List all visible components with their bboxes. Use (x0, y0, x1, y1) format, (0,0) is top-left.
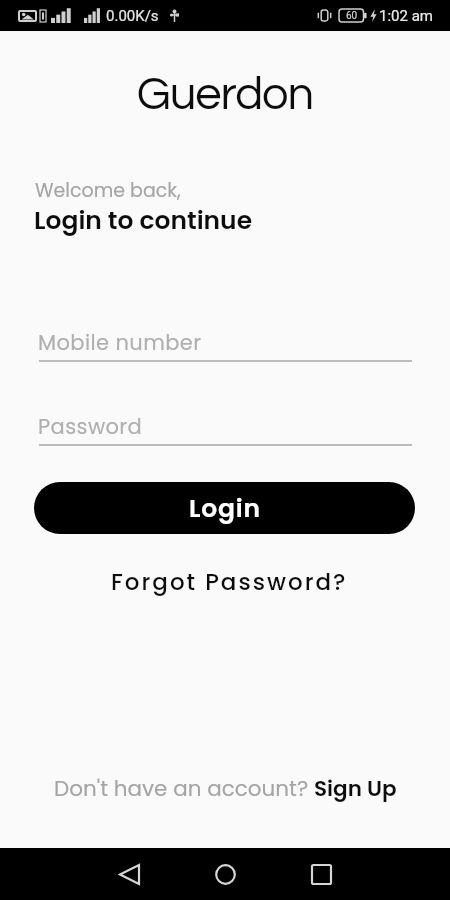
button[interactable]: Forgot Password? (101, 561, 358, 603)
staticText: Welcome back, (35, 177, 181, 204)
staticText: Guerdon (0, 70, 450, 118)
button[interactable]: Recent apps (299, 852, 343, 896)
button[interactable]: Don't have an account? (48, 769, 403, 807)
staticText: Password (38, 412, 143, 441)
staticText: Login (189, 491, 261, 526)
staticText: Sign Up (314, 773, 397, 803)
staticText: 60 (346, 10, 358, 22)
staticText: 1:02 am (379, 7, 433, 25)
button[interactable]: Login (34, 482, 415, 534)
button[interactable]: Home (203, 852, 247, 896)
staticText: 0.00K/s (106, 7, 159, 25)
staticText: Mobile number (38, 328, 202, 357)
staticText: Login to continue (34, 203, 253, 238)
staticText: Forgot Password? (111, 566, 348, 598)
button[interactable]: Back (107, 852, 151, 896)
staticText: Don't have an account? (54, 773, 314, 803)
